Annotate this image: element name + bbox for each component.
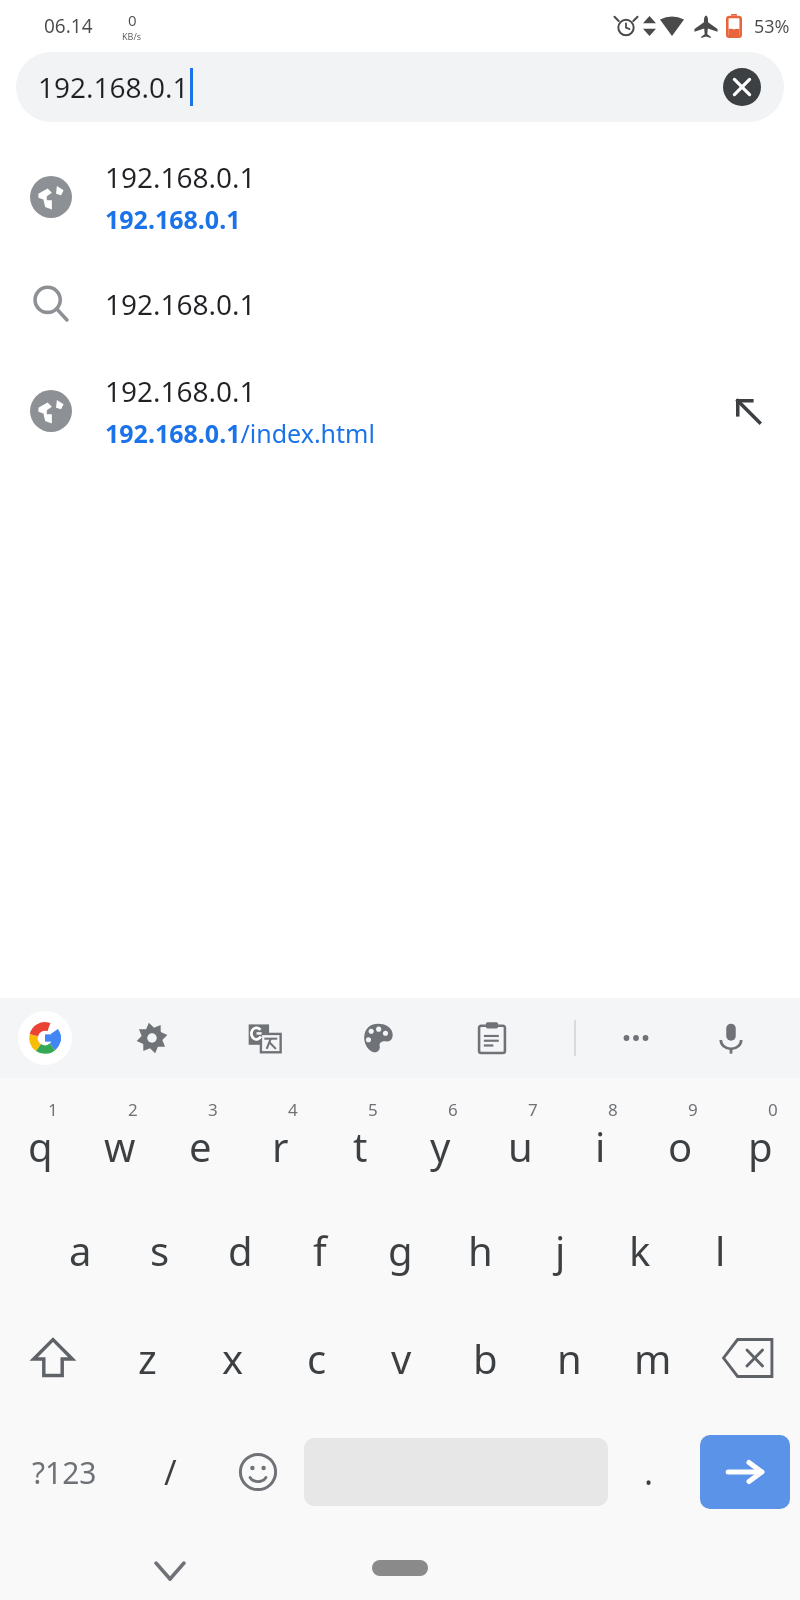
staticText: Connection Type [30,1036,234,1071]
staticText: WAN MAC [30,1222,153,1257]
staticText: x [222,1331,244,1385]
button[interactable]: Hide keyboard [148,1549,192,1593]
button[interactable]: ?123 [0,1412,128,1532]
button[interactable]: Insert suggestion [726,389,770,433]
staticText: 4 [288,1098,298,1121]
staticText: 192.168.0.1 [105,202,241,236]
staticText: Connection Duration [30,1129,284,1164]
staticText: p [748,1119,773,1173]
button[interactable]: n [527,1304,611,1412]
button[interactable]: Clipboard [466,1012,518,1064]
staticText: 192.168.0.1 [105,285,256,323]
button[interactable]: Shift [0,1304,105,1412]
button[interactable]: j [520,1196,600,1304]
staticText: y [430,1119,451,1173]
button[interactable]: More options [610,1012,662,1064]
button[interactable]: h [440,1196,520,1304]
button[interactable]: c [275,1304,359,1412]
button[interactable]: Backspace [695,1304,800,1412]
staticText: 192.168.0.1/index.html [105,416,375,450]
staticText: 8 [608,1098,618,1121]
staticText: o [668,1119,693,1173]
staticText: w [104,1119,136,1173]
button[interactable]: 8 [560,1088,640,1196]
button[interactable]: . [608,1412,690,1532]
button[interactable]: 192.168.0.1 [0,140,800,254]
button[interactable]: d [200,1196,280,1304]
staticText: 06.14 [44,13,93,39]
staticText: 3 [208,1098,218,1121]
staticText: ?123 [32,1452,97,1493]
staticText: c [307,1331,327,1385]
staticText: KB/s [122,30,142,42]
staticText: 2 [128,1098,138,1121]
staticText: g [388,1223,413,1277]
staticText: 6 [448,1098,458,1121]
staticText: h [468,1223,493,1277]
staticText: 5 [368,1098,378,1121]
button[interactable]: b [443,1304,527,1412]
button[interactable]: 2 [80,1088,160,1196]
button[interactable]: Go [700,1435,790,1509]
button[interactable]: 5 [320,1088,400,1196]
staticText: f [313,1223,327,1277]
staticText: 7 [528,1098,538,1121]
staticText: 1 [48,1098,58,1121]
staticText: u [508,1119,533,1173]
staticText: z [138,1331,157,1385]
button[interactable]: 3 [160,1088,240,1196]
button[interactable]: 7 [480,1088,560,1196]
button[interactable]: g [360,1196,440,1304]
staticText: B4:0F:3B:67:DF:18 [430,1222,649,1257]
button[interactable]: 192.168.0.1 [0,254,800,354]
button[interactable]: k [600,1196,680,1304]
button[interactable]: Google [18,1011,72,1065]
staticText: . [644,1449,654,1495]
button[interactable]: Settings [126,1012,178,1064]
button[interactable]: 192.168.0.1 [0,354,800,468]
staticText: 0 [128,10,137,30]
staticText: b [473,1331,498,1385]
staticText: j [555,1223,566,1277]
button[interactable]: Clear [720,65,764,109]
button[interactable]: m [611,1304,695,1412]
staticText: k [629,1223,651,1277]
button[interactable]: f [280,1196,360,1304]
button[interactable]: 9 [640,1088,720,1196]
button[interactable]: Translate [239,1012,291,1064]
staticText: 9 [688,1098,698,1121]
staticText: q [28,1119,53,1173]
staticText: 15m 17s [430,1129,534,1164]
button[interactable]: Themes [352,1012,404,1064]
button[interactable]: Emoji [212,1412,304,1532]
staticText: / [164,1449,177,1495]
staticText: Dynamic IP [430,1036,568,1071]
staticText: s [150,1223,170,1277]
staticText: d [228,1223,253,1277]
button[interactable]: 6 [400,1088,480,1196]
button[interactable]: z [105,1304,190,1412]
button[interactable]: Home [372,1560,428,1576]
button[interactable]: a [40,1196,120,1304]
staticText: i [595,1119,606,1173]
staticText: 192.168.0.1 [430,1315,570,1350]
button[interactable]: x [190,1304,275,1412]
button[interactable]: Voice input [705,1012,757,1064]
button[interactable]: 4 [240,1088,320,1196]
staticText: 192.168.0.1 [105,158,256,196]
button[interactable]: s [120,1196,200,1304]
button[interactable]: / [128,1412,212,1532]
staticText: m [634,1331,672,1385]
staticText: e [189,1119,212,1173]
staticText: 192.168.0.1 [38,68,189,106]
button[interactable]: 1 [0,1088,80,1196]
staticText: r [272,1119,289,1173]
button[interactable]: 192.168.0.1 [16,52,784,122]
button[interactable]: v [359,1304,443,1412]
button[interactable]: 0 [720,1088,800,1196]
button[interactable]: l [680,1196,760,1304]
staticText: n [557,1331,582,1385]
staticText: 53% [754,14,790,39]
